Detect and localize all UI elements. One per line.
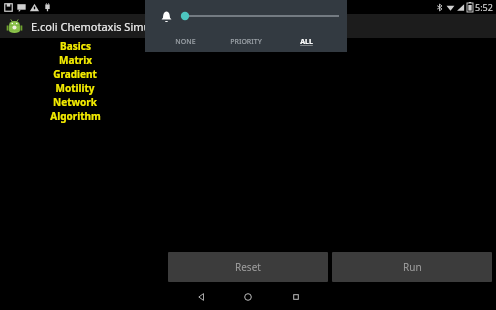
staticText: Algorithm xyxy=(50,109,101,123)
button[interactable]: Basics xyxy=(0,39,150,53)
button[interactable]: Home xyxy=(233,284,263,310)
staticText: Matrix xyxy=(59,53,92,67)
staticText: Run xyxy=(403,260,422,274)
staticText: E.coli Chemotaxis Simulator xyxy=(31,19,175,34)
button[interactable]: Motility xyxy=(0,81,150,95)
button[interactable]: Matrix xyxy=(0,53,150,67)
staticText: ALL xyxy=(300,37,313,47)
button[interactable]: Network xyxy=(0,95,150,109)
staticText: Reset xyxy=(235,260,261,274)
staticText: Gradient xyxy=(53,67,97,81)
button[interactable]: Run xyxy=(332,252,492,282)
staticText: NONE xyxy=(175,37,196,47)
button[interactable]: Recent apps xyxy=(281,284,311,310)
button[interactable]: Algorithm xyxy=(0,109,150,123)
staticText: Basics xyxy=(60,39,91,53)
button[interactable]: Back xyxy=(186,284,216,310)
button[interactable]: Ringer volume xyxy=(157,7,175,25)
button[interactable]: PRIORITY xyxy=(215,32,276,52)
button[interactable] xyxy=(179,7,341,25)
button[interactable]: NONE xyxy=(155,32,215,52)
staticText: 5:52 xyxy=(475,1,493,13)
button[interactable]: Gradient xyxy=(0,67,150,81)
staticText: Motility xyxy=(55,81,95,95)
staticText: Network xyxy=(53,95,97,109)
button[interactable]: Reset xyxy=(168,252,328,282)
staticText: PRIORITY xyxy=(230,37,262,47)
button[interactable]: ALL xyxy=(276,32,337,52)
